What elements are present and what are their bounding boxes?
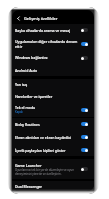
staticText: Gelişmiş özellikler bbox=[24, 16, 58, 21]
button[interactable]: Hareketler ve işaretler bbox=[12, 90, 94, 102]
button[interactable]: Toggle bbox=[81, 167, 88, 171]
button[interactable]: Toggle bbox=[81, 56, 88, 60]
staticText: Android Auto bbox=[15, 68, 38, 73]
button[interactable]: Bixby Routines bbox=[12, 118, 94, 130]
button[interactable]: Toggle bbox=[81, 135, 88, 139]
button[interactable]: Yan tuş bbox=[12, 79, 94, 90]
button[interactable]: Toggle bbox=[81, 42, 88, 46]
staticText: Bixby Routines bbox=[15, 122, 40, 127]
button[interactable]: Başka cihazlarda arama ve mesaj bbox=[12, 24, 94, 36]
button[interactable]: Ekran alıntıları ve ekran kaydedici bbox=[12, 130, 94, 144]
button[interactable]: Dual Messenger bbox=[12, 181, 94, 191]
button[interactable]: Uygulamaları diğer cihazlarda devam etti… bbox=[12, 36, 94, 51]
staticText: Yan tuş bbox=[15, 82, 28, 87]
button[interactable]: Back bbox=[12, 13, 24, 24]
staticText: Oyunlarınızı tek bir yerde düzenleyin ve… bbox=[15, 168, 78, 176]
staticText: Hareketler ve işaretler bbox=[15, 94, 53, 99]
button[interactable]: İçerik paylaşılan kişileri göster bbox=[12, 144, 94, 156]
staticText: Ekran alıntıları ve ekran kaydedici bbox=[15, 135, 72, 140]
staticText: İçerik paylaşılan kişileri göster bbox=[15, 148, 66, 153]
staticText: Uygulamaları diğer cihazlarda devam etti… bbox=[15, 39, 78, 49]
staticText: Dual Messenger bbox=[15, 184, 43, 189]
staticText: Windows bağlantısı bbox=[15, 55, 48, 60]
button[interactable]: Tek el modu bbox=[12, 102, 94, 117]
button[interactable]: Android Auto bbox=[12, 64, 94, 76]
staticText: Kapalı bbox=[15, 110, 24, 114]
button[interactable]: Game Launcher bbox=[12, 159, 94, 179]
staticText: Başka cihazlarda arama ve mesaj bbox=[15, 28, 71, 33]
button[interactable]: Toggle bbox=[81, 28, 88, 32]
button[interactable]: Toggle bbox=[81, 122, 88, 126]
staticText: Tek el modu bbox=[15, 105, 36, 110]
staticText: Game Launcher bbox=[15, 163, 42, 168]
button[interactable]: Toggle bbox=[81, 148, 88, 152]
button[interactable]: Toggle bbox=[81, 108, 88, 112]
button[interactable]: Windows bağlantısı bbox=[12, 51, 94, 64]
